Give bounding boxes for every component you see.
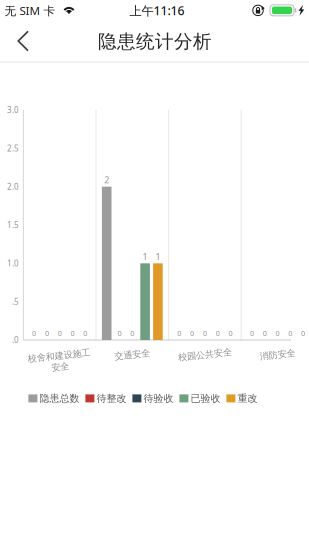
staticText: 0	[45, 328, 49, 338]
staticText: 0	[263, 328, 267, 338]
staticText: 0	[203, 328, 207, 338]
staticText: 已验收	[191, 392, 221, 405]
staticText: 0	[216, 328, 220, 338]
staticText: 0	[288, 328, 292, 338]
staticText: 1	[155, 250, 160, 262]
staticText: 0	[177, 328, 181, 338]
button[interactable]: 待整改	[85, 392, 127, 405]
staticText: 1	[143, 250, 148, 262]
staticText: 0	[275, 328, 279, 338]
staticText: 0	[58, 328, 62, 338]
staticText: 上午11:16	[129, 2, 184, 19]
button[interactable]: 返回	[0, 21, 46, 61]
staticText: 无 SIM 卡	[4, 3, 55, 18]
staticText: .0	[12, 335, 19, 345]
staticText: .5	[12, 296, 19, 307]
staticText: 0	[301, 328, 305, 338]
button[interactable]: 待验收	[132, 392, 174, 405]
staticText: 0	[250, 328, 254, 338]
staticText: 0	[32, 328, 36, 338]
staticText: 重改	[238, 392, 258, 405]
staticText: 1.5	[7, 220, 19, 230]
staticText: 0	[117, 328, 121, 338]
staticText: 2.0	[7, 181, 19, 192]
staticText: 0	[83, 328, 87, 338]
staticText: 待整改	[97, 392, 127, 405]
staticText: 消防安全	[260, 349, 296, 360]
staticText: 0	[228, 328, 232, 338]
staticText: 3.0	[7, 105, 19, 115]
button[interactable]: 重改	[226, 392, 258, 405]
staticText: 交通安全	[114, 349, 150, 360]
button[interactable]: 已验收	[179, 392, 221, 405]
staticText: 1.0	[7, 258, 19, 269]
staticText: 2	[104, 174, 109, 186]
staticText: 安全	[51, 361, 69, 373]
staticText: 0	[130, 328, 134, 338]
staticText: 0	[190, 328, 194, 338]
staticText: 待验收	[144, 392, 174, 405]
staticText: 隐患统计分析	[98, 30, 212, 53]
staticText: 校园公共安全	[178, 349, 232, 360]
staticText: 2.5	[7, 143, 19, 154]
button[interactable]: 隐患总数	[28, 392, 80, 405]
staticText: 校舍和建设施工	[28, 350, 91, 361]
staticText: 0	[70, 328, 74, 338]
staticText: 隐患总数	[40, 392, 80, 405]
